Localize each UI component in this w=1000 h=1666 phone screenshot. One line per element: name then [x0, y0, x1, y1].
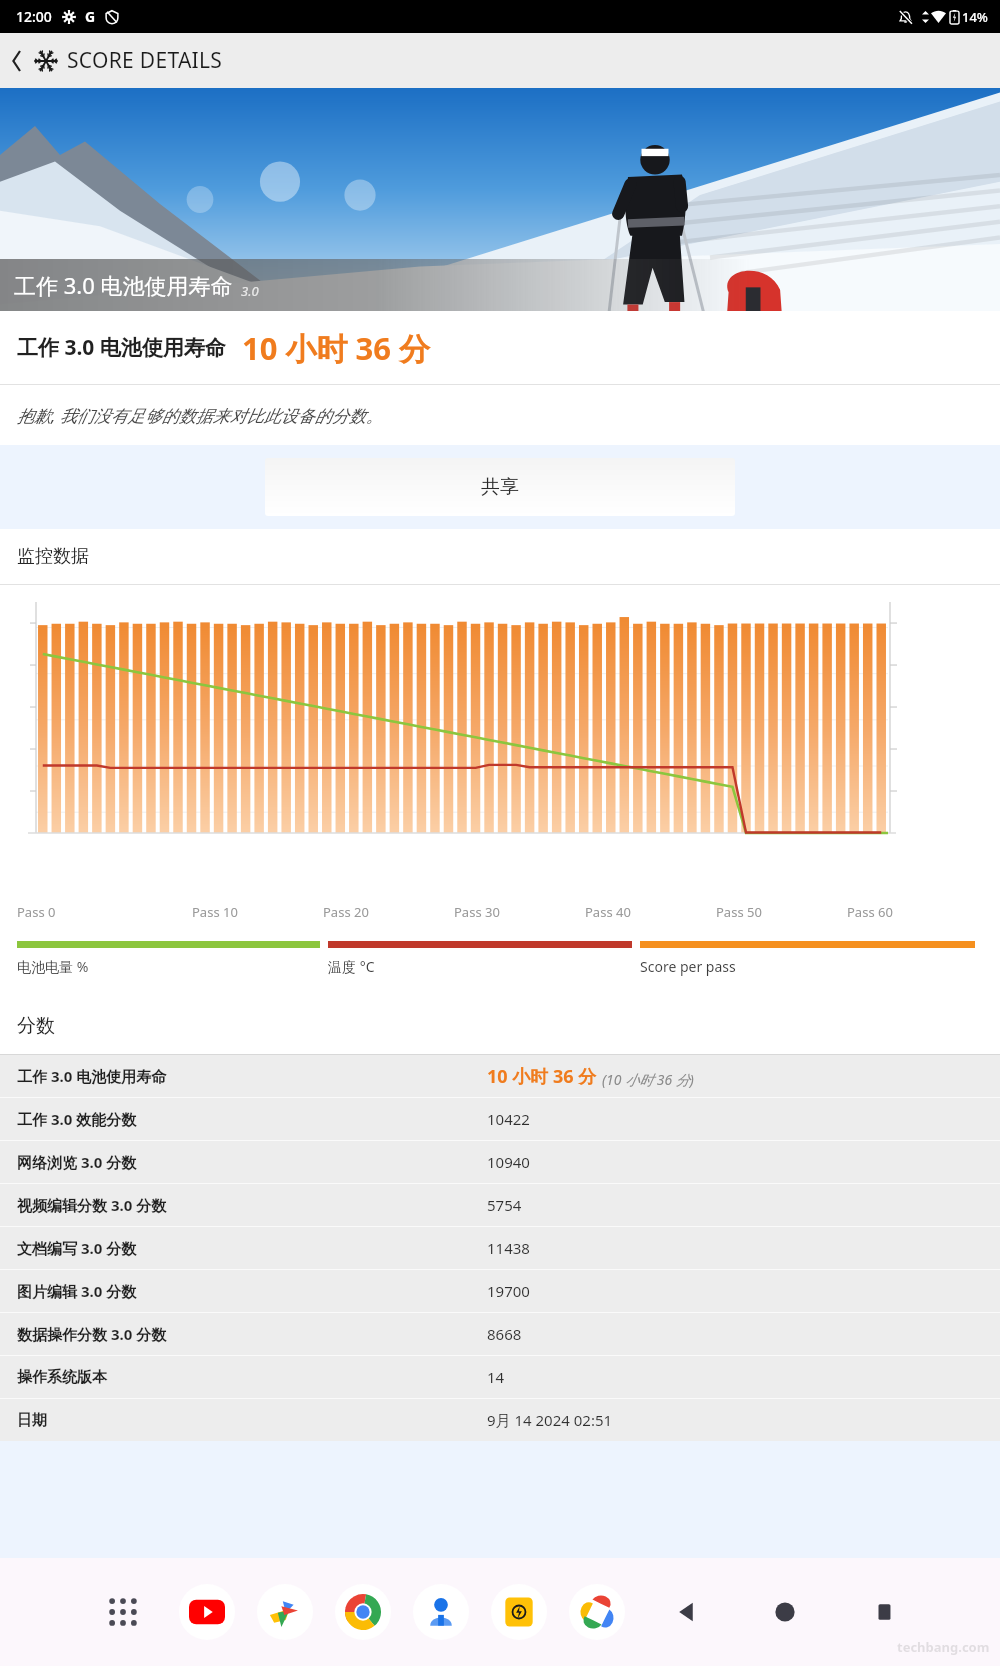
button[interactable]: 图片编辑 3.0 分数 [0, 1270, 1000, 1312]
button[interactable]: Chrome [335, 1584, 391, 1640]
staticText: 工作 3.0 效能分数 [17, 1109, 487, 1129]
staticText: 11438 [487, 1238, 530, 1258]
button[interactable]: Photos [569, 1584, 625, 1640]
staticText: 10 小时 36 分 [242, 327, 431, 369]
staticText: 10422 [487, 1109, 530, 1129]
button[interactable]: Wallet [491, 1584, 547, 1640]
button[interactable]: Gmail [257, 1584, 313, 1640]
button[interactable]: 操作系统版本 [0, 1356, 1000, 1398]
staticText: 监控数据 [17, 545, 89, 568]
staticText: Pass 10 [192, 903, 238, 921]
staticText: Pass 60 [847, 903, 893, 921]
button[interactable]: 工作 3.0 电池使用寿命 [0, 1055, 1000, 1097]
staticText: 工作 3.0 电池使用寿命 [14, 270, 233, 300]
staticText: 19700 [487, 1281, 530, 1301]
staticText: 10 小时 36 分 [487, 1064, 597, 1089]
staticText: SCORE DETAILS [67, 46, 223, 75]
staticText: 视频编辑分数 3.0 分数 [17, 1195, 487, 1215]
staticText: Pass 0 [17, 903, 56, 921]
staticText: 8668 [487, 1324, 522, 1344]
staticText: 网络浏览 3.0 分数 [17, 1152, 487, 1172]
staticText: Pass 40 [585, 903, 631, 921]
staticText: 文档编写 3.0 分数 [17, 1238, 487, 1258]
staticText: techbang.com [897, 1638, 990, 1656]
staticText: Pass 50 [716, 903, 762, 921]
staticText: 3.0 [241, 282, 259, 300]
staticText: 图片编辑 3.0 分数 [17, 1281, 487, 1301]
staticText: 抱歉, 我们没有足够的数据来对比此设备的分数。 [17, 404, 383, 427]
staticText: G [85, 7, 96, 26]
staticText: 工作 3.0 电池使用寿命 [17, 1066, 487, 1086]
button[interactable]: 数据操作分数 3.0 分数 [0, 1313, 1000, 1355]
staticText: 14% [962, 8, 988, 26]
button[interactable]: 视频编辑分数 3.0 分数 [0, 1184, 1000, 1226]
staticText: 工作 3.0 电池使用寿命 [17, 333, 226, 362]
button[interactable]: Contacts [413, 1584, 469, 1640]
button[interactable]: Apps [95, 1584, 151, 1640]
button[interactable]: Back [0, 33, 34, 88]
staticText: 电池电量 % [17, 957, 89, 976]
button[interactable]: Recents [859, 1586, 911, 1638]
staticText: 数据操作分数 3.0 分数 [17, 1324, 487, 1344]
staticText: 10940 [487, 1152, 530, 1172]
button[interactable]: Back [661, 1586, 713, 1638]
staticText: 5754 [487, 1195, 522, 1215]
staticText: 操作系统版本 [17, 1368, 487, 1387]
staticText: 温度 °C [328, 957, 375, 976]
button[interactable]: 工作 3.0 效能分数 [0, 1098, 1000, 1140]
staticText: 日期 [17, 1411, 487, 1430]
staticText: 分数 [17, 1014, 55, 1038]
button[interactable]: 网络浏览 3.0 分数 [0, 1141, 1000, 1183]
button[interactable]: 文档编写 3.0 分数 [0, 1227, 1000, 1269]
staticText: 12:00 [16, 7, 52, 26]
button[interactable]: Home [759, 1586, 811, 1638]
staticText: (10 小时 36 分) [602, 1070, 694, 1089]
staticText: Pass 20 [323, 903, 369, 921]
staticText: 14 [487, 1367, 505, 1387]
button[interactable]: 共享 [265, 458, 735, 516]
staticText: Score per pass [640, 957, 736, 976]
staticText: 共享 [481, 475, 519, 499]
button[interactable]: 日期 [0, 1399, 1000, 1441]
button[interactable]: YouTube [179, 1584, 235, 1640]
staticText: 9月 14 2024 02:51 [487, 1410, 613, 1430]
staticText: Pass 30 [454, 903, 500, 921]
